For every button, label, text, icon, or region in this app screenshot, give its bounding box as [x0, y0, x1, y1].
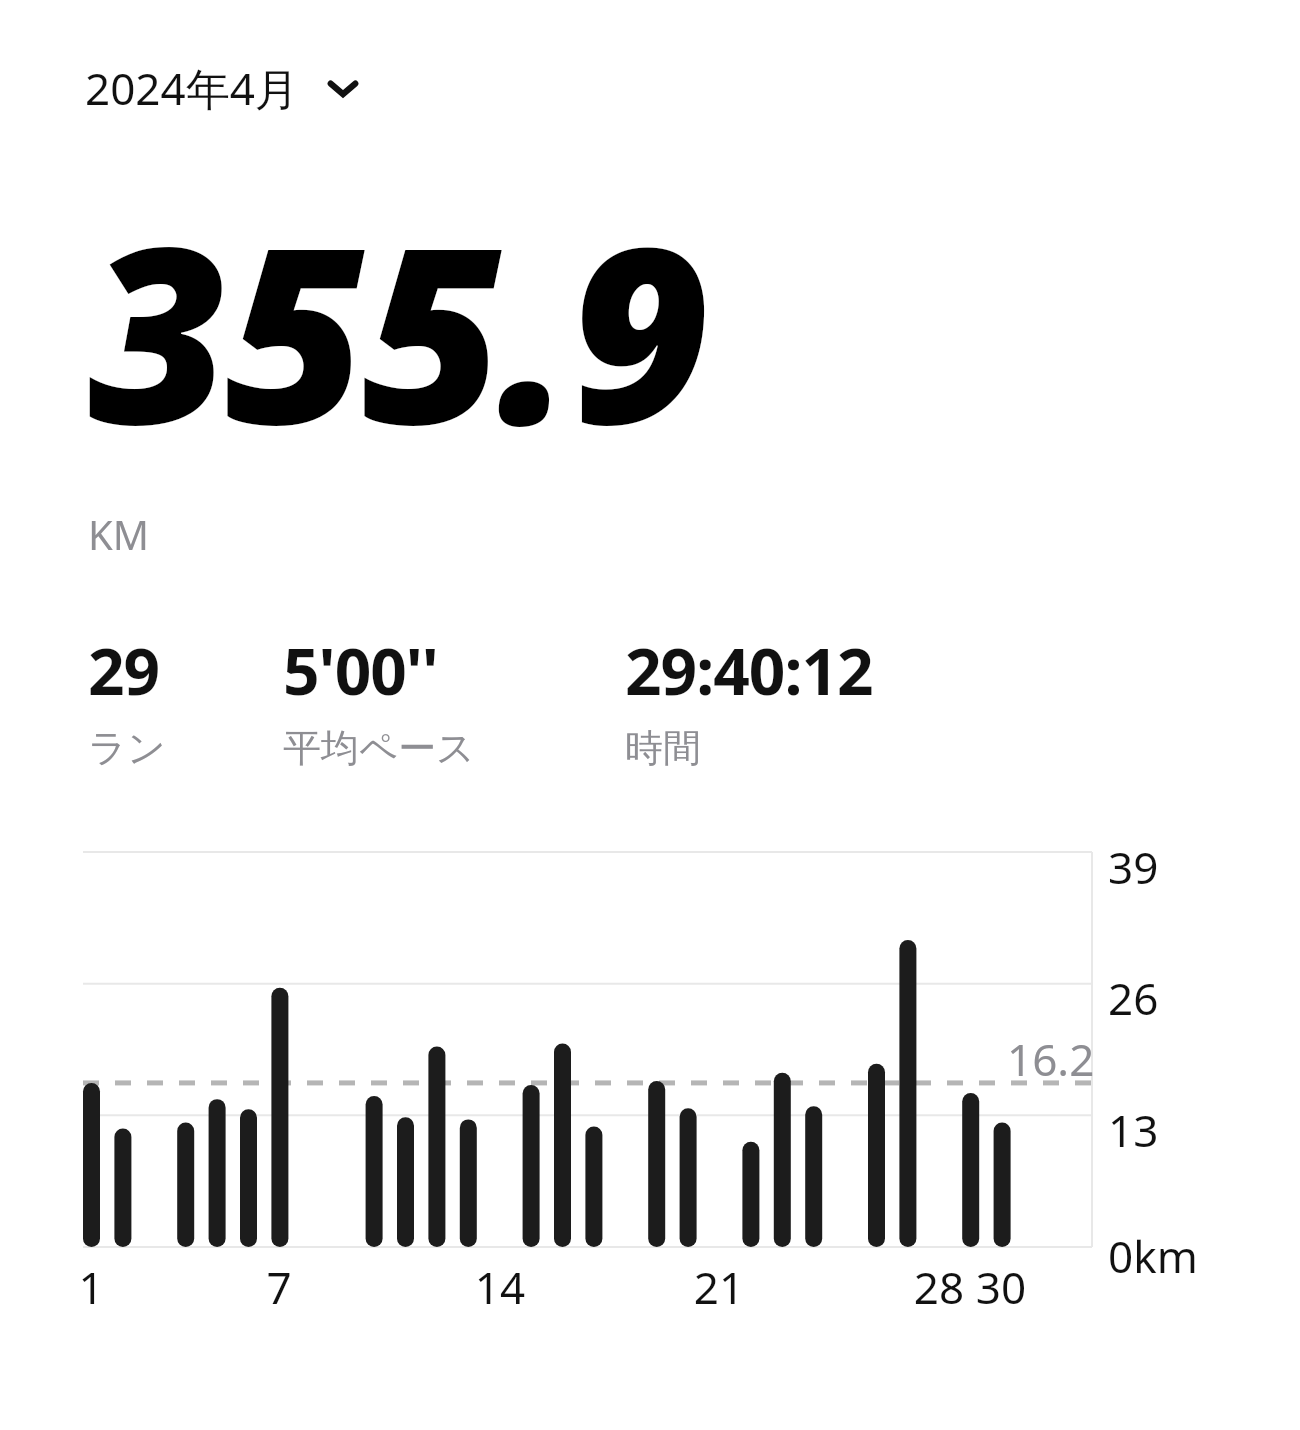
staticText: 26 — [1108, 968, 1159, 1028]
staticText: 16.2 — [1007, 1029, 1095, 1089]
staticText: 7 — [249, 1257, 309, 1317]
staticText: 30 — [971, 1257, 1031, 1317]
staticText: 28 — [909, 1257, 969, 1317]
staticText: 21 — [689, 1257, 749, 1317]
staticText: 0km — [1108, 1226, 1198, 1286]
staticText: 13 — [1108, 1100, 1159, 1160]
staticText: 29:40:12 — [625, 627, 873, 714]
staticText: 平均ペース — [283, 724, 475, 767]
staticText: ラン — [88, 724, 166, 767]
staticText: 5'00'' — [283, 627, 438, 714]
staticText: 時間 — [625, 724, 701, 767]
button[interactable]: 29 — [88, 627, 166, 767]
staticText: 39 — [1108, 837, 1159, 897]
button[interactable]: 29:40:12 — [625, 627, 873, 767]
other: Change month — [321, 66, 365, 110]
staticText: 2024年4月 — [85, 58, 299, 118]
staticText: 355.9 — [88, 164, 707, 495]
staticText: 14 — [470, 1257, 530, 1317]
button[interactable]: 2024年4月 — [85, 58, 365, 118]
staticText: KM — [88, 507, 150, 561]
button[interactable]: 5'00'' — [283, 627, 475, 767]
staticText: 29 — [88, 627, 160, 714]
staticText: 1 — [61, 1257, 121, 1317]
